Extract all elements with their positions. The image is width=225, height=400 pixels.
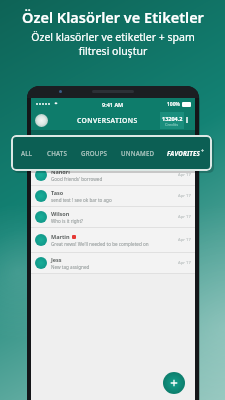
staticText: Martin [51, 233, 70, 240]
staticText: Apr 17 [178, 151, 191, 157]
staticText: Wilson [51, 210, 70, 217]
staticText: Roo [51, 147, 62, 154]
staticText: Özel Klasörler ve Etiketler [22, 7, 204, 27]
staticText: Özel klasörler ve etiketler + spam filtr… [31, 30, 195, 58]
staticText: Apr 17 [178, 172, 191, 178]
staticText: Taso [51, 189, 64, 196]
staticText: Apr 17 [178, 237, 191, 243]
staticText: Apr 17 [178, 214, 191, 220]
staticText: CHATS [47, 149, 68, 157]
button[interactable]: FAVORITES [167, 145, 201, 161]
staticText: New tag assigned [51, 264, 90, 270]
button[interactable]: Nandri [31, 165, 195, 185]
staticText: Credits [165, 122, 179, 127]
staticText: Good friends' borrowed [51, 176, 103, 182]
staticText: Apr 17 [178, 260, 191, 266]
staticText: 100% [167, 101, 180, 108]
staticText: GROUPS [81, 149, 108, 157]
staticText: CONVERSATIONS [77, 116, 138, 125]
button[interactable]: Add folder [201, 146, 204, 160]
staticText: Jess [51, 256, 62, 263]
button[interactable]: Wilson [31, 207, 195, 227]
staticText: UNNAMED [121, 149, 155, 157]
button[interactable]: Jess [31, 253, 195, 273]
button[interactable]: Martin [31, 228, 195, 252]
button[interactable]: New conversation [163, 372, 185, 394]
button[interactable]: ALL [21, 145, 33, 161]
staticText: FAVORITES [167, 149, 201, 157]
staticText: Great news! We'll needed to be completed… [51, 241, 149, 247]
button[interactable]: GROUPS [81, 145, 108, 161]
staticText: 13204.2 [162, 115, 183, 122]
button[interactable]: UNNAMED [121, 145, 155, 161]
staticText: FYI [51, 155, 58, 161]
button[interactable]: Taso [31, 186, 195, 206]
staticText: Nandri [51, 168, 70, 175]
staticText: ALL [21, 149, 33, 157]
staticText: send test ! see ok bar to ago [51, 197, 112, 203]
staticText: Apr 17 [178, 193, 191, 199]
staticText: Who is it right? [51, 218, 84, 224]
button[interactable]: 13204.2 [160, 112, 184, 129]
button[interactable]: More options [182, 115, 192, 125]
button[interactable]: Roo [31, 144, 195, 164]
button[interactable]: Profile [35, 114, 48, 127]
button[interactable]: CHATS [47, 145, 68, 161]
staticText: 9:41 AM [102, 101, 124, 108]
